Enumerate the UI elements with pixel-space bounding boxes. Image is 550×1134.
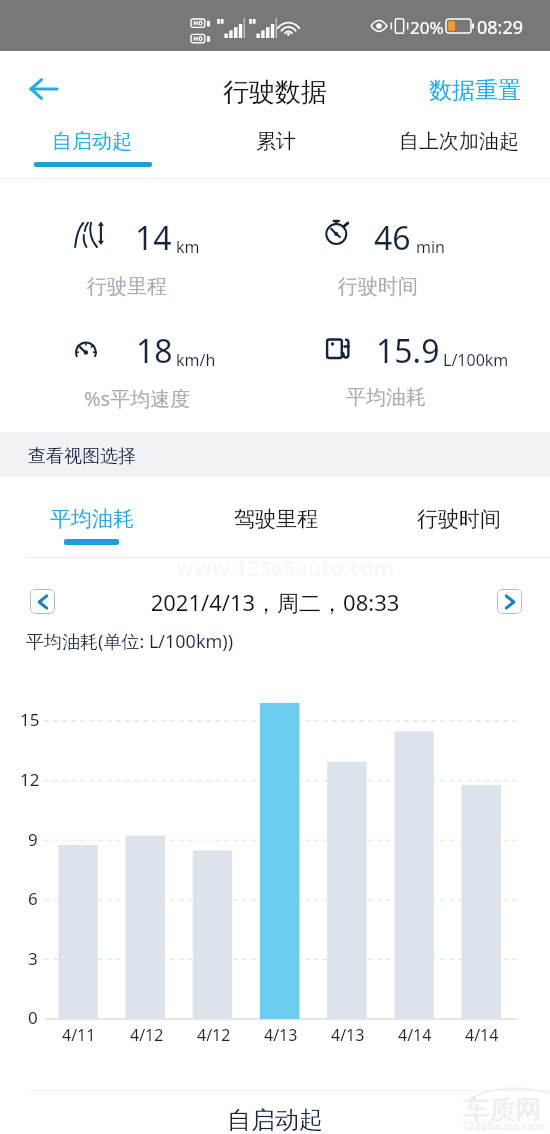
staticText: 4/12 xyxy=(197,1024,231,1046)
staticText: km/h xyxy=(176,349,216,371)
staticText: 平均油耗 xyxy=(50,506,134,532)
staticText: 平均油耗(单位: L/100km)) xyxy=(26,629,234,654)
staticText: 数据重置 xyxy=(429,76,521,105)
staticText: L/100km xyxy=(443,349,509,371)
staticText: 15.9 xyxy=(376,329,440,373)
staticText: 0 xyxy=(28,1006,38,1029)
staticText: 9 xyxy=(28,828,38,851)
staticText: 46 xyxy=(374,216,411,260)
staticText: %s平均速度 xyxy=(84,385,191,412)
staticText: 行驶数据 xyxy=(0,76,550,109)
staticText: 车质网 xyxy=(463,1094,541,1127)
staticText: 行驶时间 xyxy=(338,274,418,299)
staticText: 自上次加油起 xyxy=(399,129,519,154)
button[interactable]: 下一天 xyxy=(497,589,522,614)
button[interactable]: 行驶时间 xyxy=(367,506,550,542)
staticText: 4/14 xyxy=(465,1024,499,1046)
button[interactable]: 驾驶里程 xyxy=(184,506,367,542)
button[interactable]: 自上次加油起 xyxy=(367,129,550,169)
staticText: 4/11 xyxy=(62,1024,96,1046)
staticText: 18 xyxy=(136,329,173,373)
staticText: min xyxy=(416,236,445,258)
staticText: 4/13 xyxy=(264,1024,298,1046)
staticText: 14 xyxy=(135,216,172,260)
staticText: 平均油耗 xyxy=(346,385,426,410)
button[interactable]: 数据重置 xyxy=(421,68,529,113)
button[interactable]: 累计 xyxy=(184,129,367,169)
staticText: 4/13 xyxy=(331,1024,365,1046)
staticText: 自启动起 xyxy=(52,129,132,154)
staticText: 08:29 xyxy=(477,15,524,40)
staticText: 3 xyxy=(28,947,38,970)
button[interactable]: 自启动起 xyxy=(0,1091,550,1134)
staticText: 15 xyxy=(20,708,40,731)
staticText: 2021/4/13，周二，08:33 xyxy=(0,587,550,617)
button[interactable]: 上一天 xyxy=(30,589,55,614)
staticText: www.12365auto.com xyxy=(176,554,394,583)
staticText: 12 xyxy=(20,768,40,791)
staticText: 累计 xyxy=(256,129,296,154)
staticText: 查看视图选择 xyxy=(28,445,136,468)
staticText: 自启动起 xyxy=(227,1105,323,1134)
staticText: 12365auto.com xyxy=(462,1118,546,1133)
staticText: 6 xyxy=(28,887,38,910)
staticText: 行驶里程 xyxy=(87,274,167,299)
staticText: km xyxy=(176,236,200,258)
button[interactable]: 平均油耗 xyxy=(0,506,184,542)
staticText: 4/14 xyxy=(398,1024,432,1046)
staticText: 20% xyxy=(410,16,444,39)
button[interactable]: 返回 xyxy=(16,69,72,109)
staticText: 4/12 xyxy=(130,1024,164,1046)
staticText: 驾驶里程 xyxy=(234,506,318,532)
button[interactable]: 自启动起 xyxy=(0,129,184,169)
staticText: 行驶时间 xyxy=(417,506,501,532)
